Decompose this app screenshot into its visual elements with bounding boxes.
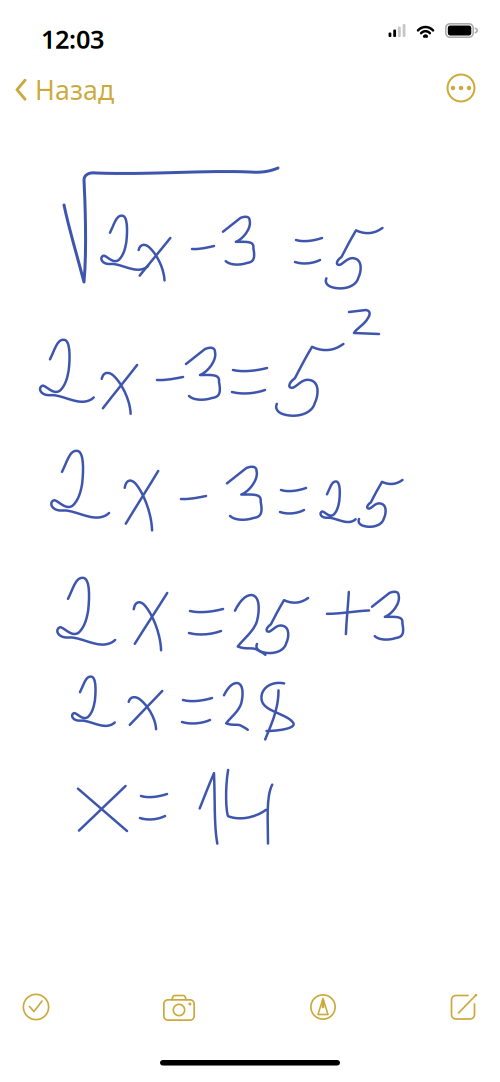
button[interactable]: Checklist — [10, 988, 62, 1034]
button[interactable]: More — [438, 65, 484, 111]
button[interactable]: Назад — [2, 63, 127, 116]
button[interactable]: Camera — [153, 988, 205, 1034]
staticText: Назад — [35, 72, 114, 107]
staticText: 12:03 — [41, 22, 104, 56]
button[interactable]: New Note — [437, 988, 489, 1034]
button[interactable]: Markup — [297, 988, 349, 1034]
